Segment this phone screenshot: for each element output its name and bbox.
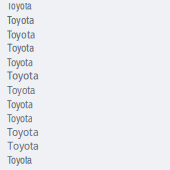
staticText: Toyota (7, 125, 39, 139)
staticText: Toyota (7, 13, 34, 26)
staticText: Toyota (7, 0, 32, 13)
staticText: Toyota (7, 42, 34, 54)
staticText: Toyota (7, 97, 33, 111)
staticText: Toyota (7, 153, 32, 167)
staticText: Toyota (7, 55, 33, 69)
staticText: Toyota (7, 140, 39, 152)
staticText: Toyota (7, 26, 35, 42)
staticText: Toyota (7, 70, 39, 82)
staticText: Toyota (7, 83, 35, 97)
staticText: Toyota (7, 111, 33, 125)
